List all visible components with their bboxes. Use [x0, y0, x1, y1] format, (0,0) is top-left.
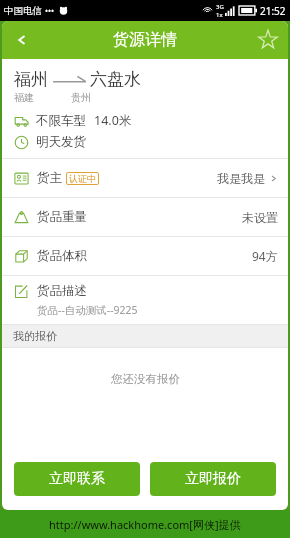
staticText: 货品--自动测试--9225: [37, 303, 138, 317]
staticText: 福州: [14, 69, 48, 90]
staticText: 我是我是: [217, 171, 265, 186]
staticText: 3G: [216, 3, 224, 11]
staticText: 明天发货: [36, 134, 86, 150]
staticText: 六盘水: [90, 69, 141, 90]
staticText: 货源详情: [113, 30, 177, 50]
button[interactable]: 货品体积: [2, 237, 288, 275]
staticText: 货品描述: [37, 283, 87, 299]
staticText: 贵州: [71, 91, 91, 104]
button[interactable]: 立即联系: [14, 462, 140, 496]
staticText: 未设置: [242, 210, 278, 225]
staticText: 认证中: [69, 173, 96, 184]
staticText: 货品重量: [37, 209, 87, 225]
staticText: 立即联系: [49, 470, 105, 488]
staticText: 21:52: [260, 4, 286, 18]
button[interactable]: 货主: [2, 159, 288, 197]
button[interactable]: Back: [2, 21, 42, 59]
staticText: 货品体积: [37, 248, 87, 264]
staticText: 14.0米: [94, 112, 132, 129]
button[interactable]: 立即报价: [150, 462, 276, 496]
staticText: 货主: [37, 170, 62, 186]
staticText: •••: [45, 5, 55, 16]
staticText: 94方: [252, 248, 278, 264]
staticText: 您还没有报价: [111, 372, 180, 386]
staticText: 立即报价: [185, 470, 241, 488]
staticText: 1x: [216, 11, 223, 19]
staticText: 我的报价: [13, 329, 57, 343]
button[interactable]: Favorite: [248, 21, 288, 59]
staticText: 不限车型: [36, 113, 86, 129]
staticText: http://www.hackhome.com[网侠]提供: [49, 517, 241, 532]
staticText: 福建: [14, 91, 34, 104]
staticText: 中国电信: [4, 5, 42, 17]
button[interactable]: 货品重量: [2, 198, 288, 236]
button[interactable]: 货品描述: [2, 276, 288, 324]
